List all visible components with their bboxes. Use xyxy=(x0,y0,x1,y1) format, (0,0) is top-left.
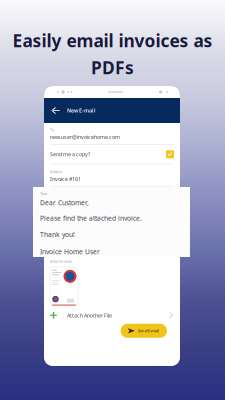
staticText: new.user@invoicehome.com xyxy=(50,133,120,141)
staticText: Attachments xyxy=(50,258,72,264)
button[interactable]: Send me a copy? xyxy=(50,145,174,164)
staticText: To xyxy=(50,127,54,132)
staticText: Subject xyxy=(50,169,62,174)
button[interactable]: Send E-mail xyxy=(121,324,167,338)
staticText: Dear Customer, xyxy=(40,198,89,207)
staticText: Easily email invoices as xyxy=(12,29,212,52)
staticText: Invoice Home User xyxy=(40,247,100,256)
staticText: New E-mail xyxy=(67,107,96,114)
staticText: Thank you! xyxy=(40,230,75,239)
button[interactable]: Attach Another File xyxy=(50,310,174,321)
button[interactable]: Back xyxy=(44,98,67,123)
staticText: PDFs xyxy=(91,56,134,79)
staticText: Attach Another File xyxy=(67,312,112,319)
staticText: Text xyxy=(40,191,47,196)
staticText: Send me a copy? xyxy=(50,151,90,158)
staticText: Send E-mail xyxy=(138,328,159,333)
staticText: Invoice #161 xyxy=(50,175,81,182)
staticText: Please find the attached invoice. xyxy=(40,214,142,223)
